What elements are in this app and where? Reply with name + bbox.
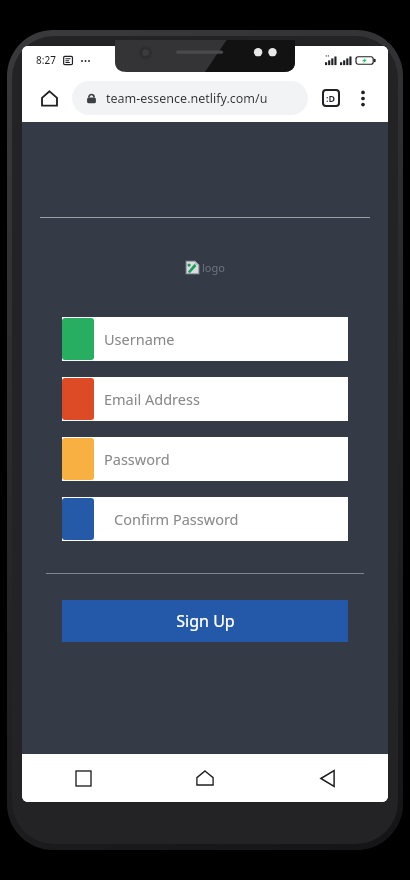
button[interactable]: team-essence.netlify.com/u: [72, 81, 308, 115]
staticText: Email Address: [104, 389, 200, 409]
button[interactable]: Email Address: [62, 377, 348, 421]
staticText: Username: [104, 329, 175, 349]
button[interactable]: Tabs: [314, 81, 348, 115]
button[interactable]: Sign Up: [62, 600, 348, 642]
staticText: Confirm Password: [114, 509, 239, 529]
button[interactable]: Home: [144, 754, 266, 802]
staticText: Sign Up: [176, 610, 235, 632]
button[interactable]: Recent apps: [22, 754, 144, 802]
staticText: Password: [104, 449, 170, 469]
button[interactable]: Confirm Password: [62, 497, 348, 541]
staticText: :D: [326, 92, 336, 104]
button[interactable]: Home: [32, 81, 66, 115]
staticText: logo: [202, 260, 225, 275]
button[interactable]: More options: [348, 83, 378, 113]
staticText: team-essence.netlify.com/u: [106, 90, 268, 107]
button[interactable]: Username: [62, 317, 348, 361]
button[interactable]: Password: [62, 437, 348, 481]
staticText: 8:27: [36, 53, 56, 67]
button[interactable]: Back: [266, 754, 388, 802]
